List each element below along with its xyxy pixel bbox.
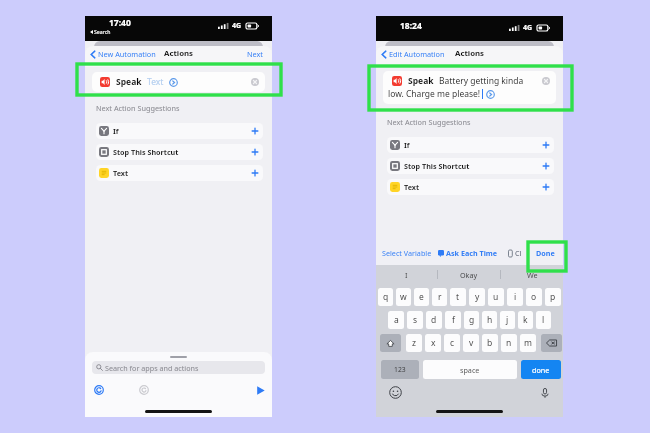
staticText: 18:24 (400, 20, 422, 32)
button[interactable]: New Automation (90, 49, 156, 59)
staticText: h (487, 314, 493, 326)
staticText: Speak (408, 75, 434, 87)
button[interactable]: Speak (383, 71, 556, 104)
button[interactable]: z (406, 334, 422, 352)
staticText: 4G (232, 21, 242, 31)
button[interactable]: Shift (380, 334, 401, 352)
button[interactable]: n (501, 334, 517, 352)
button[interactable]: Ask Each Time (438, 248, 498, 258)
button[interactable]: 123 (381, 360, 419, 379)
staticText: If (404, 140, 410, 150)
button[interactable]: p (545, 288, 561, 306)
staticText: Text (113, 168, 129, 178)
button[interactable]: Apps (139, 385, 149, 395)
staticText: Search (94, 28, 111, 35)
staticText: u (493, 291, 499, 303)
button[interactable]: b (482, 334, 498, 352)
staticText: k (523, 314, 528, 326)
button[interactable]: We (501, 265, 563, 284)
button[interactable]: m (520, 334, 536, 352)
button[interactable]: Play (255, 385, 266, 396)
button[interactable]: c (444, 334, 460, 352)
staticText: Search for apps and actions (105, 363, 199, 373)
staticText: 4G (523, 23, 533, 33)
button[interactable]: v (463, 334, 479, 352)
staticText: We (527, 270, 538, 280)
button[interactable]: Select Variable (382, 248, 432, 258)
button[interactable]: a (388, 311, 404, 329)
button[interactable]: i (507, 288, 523, 306)
button[interactable]: e (414, 288, 429, 306)
staticText: t (456, 291, 460, 303)
staticText: m (524, 337, 532, 349)
button[interactable]: x (425, 334, 441, 352)
staticText: g (469, 314, 475, 326)
button[interactable]: r (432, 288, 447, 306)
staticText: low. Charge me please! (388, 88, 481, 100)
staticText: Battery getting kinda (439, 75, 524, 87)
button[interactable]: k (518, 311, 533, 329)
staticText: w (400, 291, 407, 303)
button[interactable]: q (378, 288, 393, 306)
staticText: d (431, 314, 437, 326)
button[interactable]: o (526, 288, 542, 306)
button[interactable]: u (488, 288, 504, 306)
button[interactable]: Text (96, 165, 263, 181)
staticText: Okay (460, 270, 478, 280)
staticText: Next Action Suggestions (387, 117, 471, 127)
staticText: Ask Each Time (446, 248, 498, 258)
staticText: Done (536, 248, 555, 258)
staticText: q (383, 291, 389, 303)
button[interactable]: w (396, 288, 411, 306)
button[interactable]: Shortcuts (94, 385, 104, 395)
staticText: b (487, 337, 493, 349)
button[interactable]: Done (536, 248, 555, 258)
staticText: Next Action Suggestions (96, 103, 180, 113)
staticText: j (506, 314, 509, 326)
button[interactable]: y (469, 288, 485, 306)
staticText: v (469, 337, 474, 349)
button[interactable]: l (536, 311, 551, 329)
button[interactable]: h (482, 311, 497, 329)
staticText: l (542, 314, 545, 326)
staticText: Edit Automation (389, 49, 445, 59)
staticText: Text (147, 76, 164, 88)
button[interactable]: Next (247, 49, 264, 59)
button[interactable]: If (387, 137, 554, 153)
button[interactable]: Speak (92, 72, 265, 92)
button[interactable]: f (445, 311, 461, 329)
staticText: Select Variable (382, 248, 432, 258)
staticText: y (475, 291, 480, 303)
button[interactable]: Emoji (389, 386, 402, 399)
staticText: Actions (164, 48, 193, 59)
staticText: I (405, 270, 408, 280)
button[interactable]: Search for apps and actions (92, 361, 265, 374)
button[interactable]: Stop This Shortcut (96, 144, 263, 160)
button[interactable]: d (426, 311, 442, 329)
button[interactable]: I (376, 265, 437, 284)
staticText: Actions (455, 48, 484, 59)
button[interactable]: j (500, 311, 515, 329)
staticText: Cl (515, 248, 522, 258)
staticText: a (394, 314, 399, 326)
button[interactable]: s (407, 311, 423, 329)
button[interactable]: Stop This Shortcut (387, 158, 554, 174)
staticText: If (113, 126, 119, 136)
button[interactable]: space (423, 360, 517, 379)
button[interactable]: If (96, 123, 263, 139)
button[interactable]: Dictate (539, 387, 551, 399)
staticText: Stop This Shortcut (404, 161, 470, 171)
button[interactable]: Text (387, 179, 554, 195)
button[interactable]: t (450, 288, 466, 306)
staticText: f (452, 314, 455, 326)
button[interactable]: g (464, 311, 479, 329)
staticText: o (531, 291, 537, 303)
staticText: New Automation (98, 49, 156, 59)
button[interactable]: Edit Automation (381, 49, 445, 59)
button[interactable]: done (521, 360, 561, 379)
staticText: Stop This Shortcut (113, 147, 179, 157)
staticText: e (419, 291, 424, 303)
staticText: Speak (116, 76, 142, 88)
button[interactable]: Backspace (541, 334, 562, 352)
button[interactable]: Okay (438, 265, 500, 284)
